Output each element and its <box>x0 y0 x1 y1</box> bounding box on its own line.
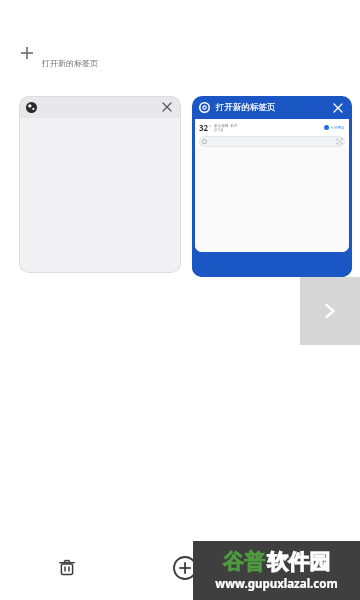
staticText: 软件园 <box>267 549 330 575</box>
button[interactable] <box>199 136 345 147</box>
staticText: www.gupuxlazal.com <box>193 576 360 592</box>
other: New tab <box>20 46 34 60</box>
button[interactable]: Close tab <box>19 96 181 273</box>
button[interactable]: New tab <box>171 554 199 582</box>
staticText: 打开新的标签页 <box>216 102 276 113</box>
staticText: 打开新的标签页 <box>42 58 98 68</box>
staticText: 32 <box>199 122 209 133</box>
staticText: 空气良 <box>214 128 224 132</box>
button[interactable]: Next <box>300 277 360 345</box>
button[interactable]: New tab <box>10 42 140 76</box>
button[interactable]: 打开新的标签页 <box>192 96 352 277</box>
button[interactable]: Close tab <box>160 100 174 114</box>
staticText: 打开网页 <box>331 126 345 130</box>
button[interactable]: Close all tabs <box>49 550 85 586</box>
staticText: 多云转晴 长沙 <box>214 123 238 128</box>
staticText: ° <box>209 124 212 131</box>
button[interactable]: Close tab <box>331 101 345 115</box>
staticText: 谷普 <box>223 549 265 575</box>
